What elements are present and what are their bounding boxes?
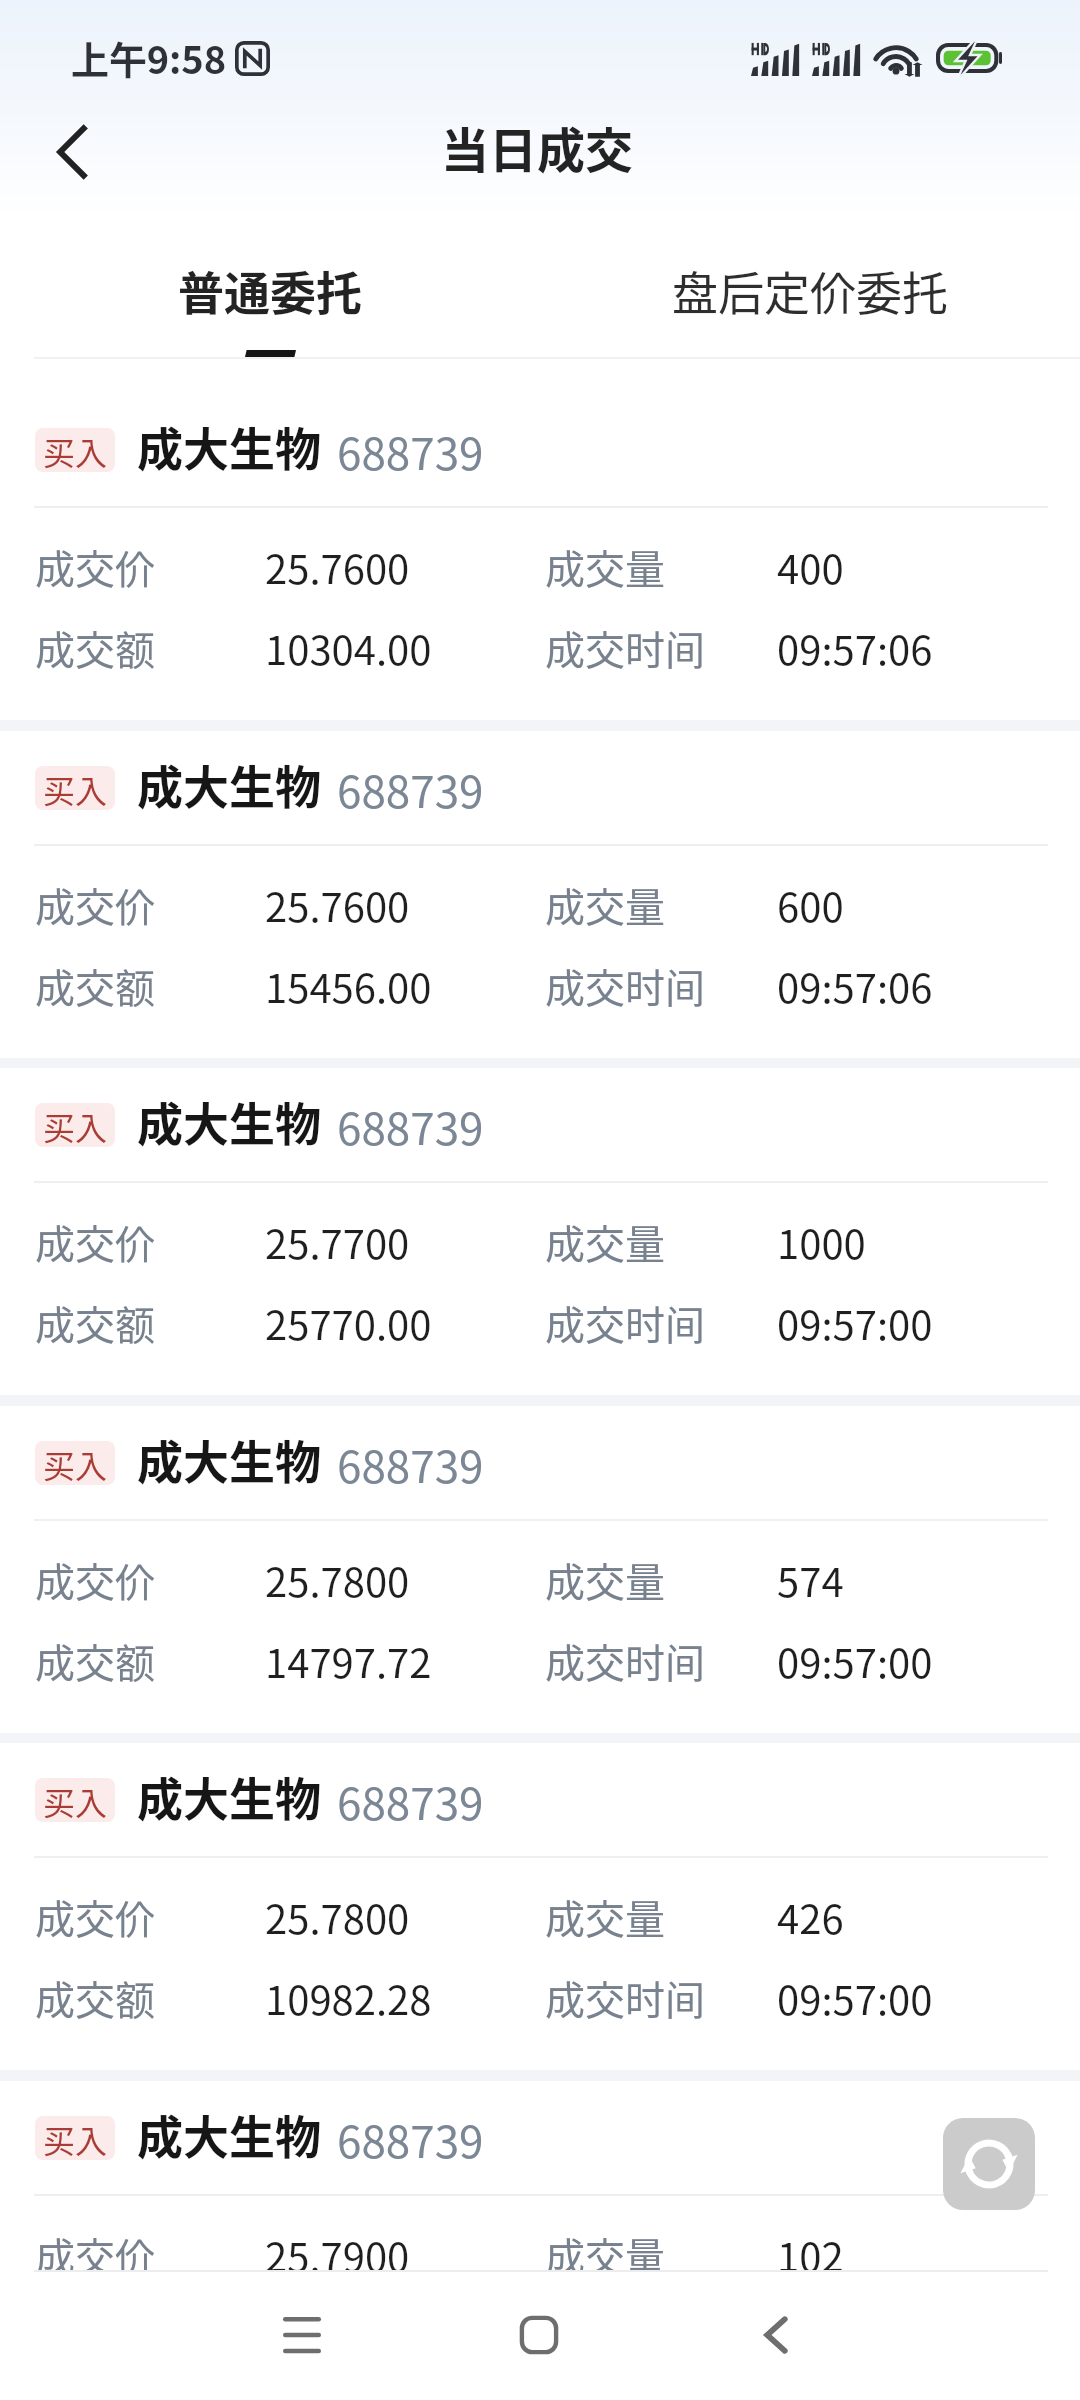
staticText: 成大生物 — [137, 1426, 321, 1493]
staticText: 574 — [777, 1551, 844, 1609]
staticText: 09:57:00 — [777, 2307, 933, 2365]
staticText: 成交时间 — [545, 1294, 705, 1352]
staticText: 688739 — [337, 2107, 484, 2171]
staticText: 成交时间 — [545, 1969, 705, 2027]
staticText: 成交量 — [545, 2226, 665, 2284]
staticText: 成交额 — [35, 1294, 155, 1352]
staticText: 2630.58 — [265, 2307, 410, 2365]
staticText: 买入 — [43, 2116, 108, 2160]
staticText: 09:57:00 — [777, 1969, 933, 2027]
staticText: 688739 — [337, 1432, 484, 1496]
staticText: 成交时间 — [545, 2307, 705, 2365]
staticText: 成交量 — [545, 538, 665, 596]
staticText: 10982.28 — [265, 1969, 432, 2027]
staticText: 成大生物 — [137, 1763, 321, 1830]
staticText: 09:57:00 — [777, 1294, 933, 1352]
staticText: 688739 — [337, 1094, 484, 1158]
staticText: 09:57:06 — [777, 619, 933, 677]
staticText: 102 — [777, 2226, 844, 2284]
staticText: 当日成交 — [441, 112, 634, 182]
staticText: 25.7600 — [265, 538, 410, 596]
staticText: 25.7900 — [265, 2226, 410, 2284]
staticText: 成交量 — [545, 1888, 665, 1946]
staticText: 上午9:58 — [71, 30, 227, 85]
staticText: 400 — [777, 538, 844, 596]
staticText: 1000 — [777, 1213, 866, 1271]
staticText: 成交额 — [35, 1632, 155, 1690]
staticText: 成交价 — [35, 876, 155, 934]
button[interactable]: 买入 — [0, 2081, 1080, 2400]
staticText: 25.7800 — [265, 1888, 410, 1946]
staticText: 成交额 — [35, 957, 155, 1015]
staticText: 成交价 — [35, 1213, 155, 1271]
staticText: 成交量 — [545, 1551, 665, 1609]
staticText: 600 — [777, 876, 844, 934]
button[interactable]: 买入 — [0, 1743, 1080, 2070]
staticText: 25.7700 — [265, 1213, 410, 1271]
staticText: 10304.00 — [265, 619, 432, 677]
button[interactable]: 盘后定价委托 — [540, 218, 1080, 358]
staticText: 成大生物 — [137, 2101, 321, 2168]
staticText: 成交量 — [545, 876, 665, 934]
staticText: 25.7600 — [265, 876, 410, 934]
staticText: 成大生物 — [137, 751, 321, 818]
staticText: 成大生物 — [137, 1088, 321, 1155]
staticText: 买入 — [43, 1441, 108, 1485]
button[interactable]: 买入 — [0, 1406, 1080, 1733]
staticText: 成大生物 — [137, 413, 321, 480]
staticText: 成交价 — [35, 1551, 155, 1609]
staticText: 成交量 — [545, 1213, 665, 1271]
staticText: 买入 — [43, 1103, 108, 1147]
staticText: 盘后定价委托 — [672, 257, 948, 324]
button[interactable]: 买入 — [0, 1068, 1080, 1395]
staticText: 成交价 — [35, 1888, 155, 1946]
staticText: 15456.00 — [265, 957, 432, 1015]
staticText: 25770.00 — [265, 1294, 432, 1352]
staticText: 普通委托 — [178, 257, 362, 324]
staticText: 688739 — [337, 419, 484, 483]
staticText: 426 — [777, 1888, 844, 1946]
staticText: 买入 — [43, 766, 108, 810]
staticText: 688739 — [337, 1769, 484, 1833]
button[interactable]: 买入 — [0, 393, 1080, 720]
staticText: 14797.72 — [265, 1632, 432, 1690]
button[interactable]: Home — [479, 2275, 599, 2395]
staticText: 成交时间 — [545, 619, 705, 677]
button[interactable]: 买入 — [0, 731, 1080, 1058]
staticText: 09:57:00 — [777, 1632, 933, 1690]
staticText: 成交价 — [35, 538, 155, 596]
staticText: 25.7800 — [265, 1551, 410, 1609]
staticText: 成交时间 — [545, 1632, 705, 1690]
button[interactable]: Back — [716, 2275, 836, 2395]
button[interactable]: Back — [16, 112, 126, 218]
button[interactable]: Recent apps — [242, 2275, 362, 2395]
staticText: 09:57:06 — [777, 957, 933, 1015]
staticText: 成交额 — [35, 1969, 155, 2027]
button[interactable]: 普通委托 — [0, 218, 540, 358]
staticText: 成交额 — [35, 619, 155, 677]
button[interactable]: Refresh — [943, 2118, 1035, 2210]
staticText: 买入 — [43, 428, 108, 472]
staticText: 成交时间 — [545, 957, 705, 1015]
staticText: 688739 — [337, 757, 484, 821]
staticText: 买入 — [43, 1778, 108, 1822]
staticText: 成交价 — [35, 2226, 155, 2284]
